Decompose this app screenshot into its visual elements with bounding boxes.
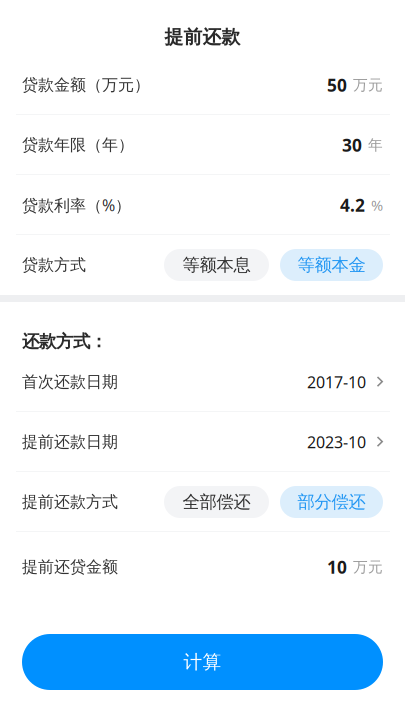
button[interactable]: 等额本金: [280, 249, 383, 281]
staticText: 10: [327, 555, 347, 578]
staticText: 贷款年限（年）: [22, 135, 134, 155]
staticText: 计算: [183, 650, 221, 673]
staticText: 2017-10: [307, 371, 366, 393]
button[interactable]: 全部偿还: [164, 486, 269, 518]
staticText: 万元: [353, 558, 383, 576]
button[interactable]: 部分偿还: [280, 486, 383, 518]
staticText: 首次还款日期: [22, 372, 118, 392]
button[interactable]: 首次还款日期: [0, 352, 405, 412]
staticText: 全部偿还: [182, 491, 250, 513]
staticText: 30: [342, 133, 362, 156]
staticText: 4.2: [340, 193, 365, 216]
staticText: 年: [368, 136, 383, 154]
staticText: 2023-10: [307, 431, 366, 453]
button[interactable]: 计算: [22, 634, 383, 690]
staticText: 提前还贷金额: [22, 557, 118, 577]
staticText: 部分偿还: [297, 491, 365, 513]
staticText: 提前还款日期: [22, 432, 118, 452]
staticText: 提前还款: [164, 25, 240, 48]
staticText: 万元: [353, 76, 383, 94]
staticText: 等额本息: [182, 254, 250, 276]
staticText: 50: [327, 73, 347, 96]
button[interactable]: 提前还款日期: [0, 412, 405, 472]
staticText: 提前还款方式: [22, 492, 118, 512]
staticText: 贷款利率（%）: [22, 194, 131, 216]
button[interactable]: 等额本息: [164, 249, 269, 281]
staticText: %: [371, 195, 383, 215]
staticText: 还款方式：: [22, 331, 107, 352]
staticText: 贷款方式: [22, 255, 86, 275]
staticText: 贷款金额（万元）: [22, 75, 150, 95]
staticText: 等额本金: [297, 254, 365, 276]
